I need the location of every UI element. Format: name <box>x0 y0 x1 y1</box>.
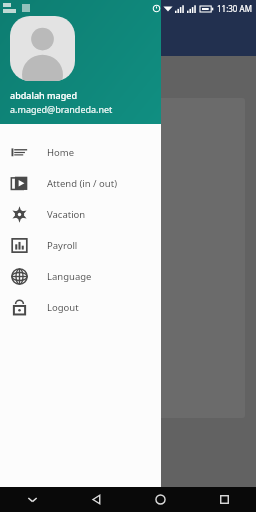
staticText: Home <box>47 146 75 159</box>
button[interactable]: Language <box>0 261 161 292</box>
staticText: Language <box>47 270 92 283</box>
staticText: Payroll <box>47 239 78 252</box>
staticText: abdalah maged <box>10 89 78 101</box>
staticText: Please scan again <box>22 296 93 308</box>
button[interactable]: Recent apps <box>192 487 256 512</box>
button[interactable]: Vacation <box>0 199 161 230</box>
button[interactable]: Back <box>64 487 128 512</box>
staticText: Attend (in / out) <box>47 177 118 190</box>
staticText: 11:30 AM <box>217 3 252 14</box>
staticText: Logout <box>47 301 79 314</box>
staticText: Vacation <box>47 208 86 221</box>
staticText: a.maged@brandeda.net <box>10 103 113 115</box>
button[interactable]: Logout <box>0 292 161 323</box>
button[interactable]: Payroll <box>0 230 161 261</box>
button[interactable]: Attend (in / out) <box>0 168 161 199</box>
button[interactable]: Home <box>128 487 192 512</box>
button[interactable]: Home <box>0 137 161 168</box>
button[interactable]: Hide keyboard <box>0 487 64 512</box>
